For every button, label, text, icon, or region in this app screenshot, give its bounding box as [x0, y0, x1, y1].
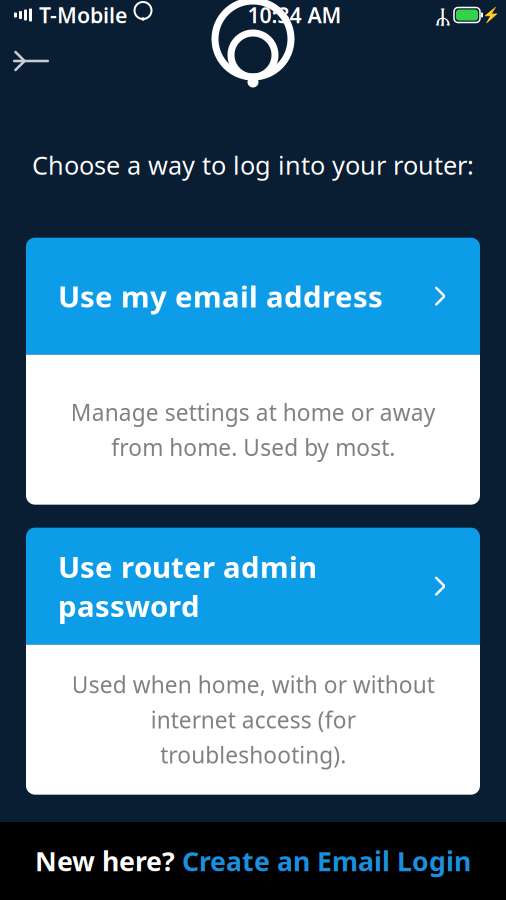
staticText: Choose a way to log into your router:	[32, 148, 474, 182]
button[interactable]: Use router admin password	[26, 528, 480, 795]
button[interactable]: Back	[0, 35, 62, 87]
staticText: Use router admin password	[58, 547, 317, 625]
staticText: New here?	[35, 843, 182, 879]
staticText: ᛦ	[435, 3, 449, 27]
staticText: Manage settings at home or away from hom…	[70, 397, 435, 462]
staticText: 10:34 AM	[247, 1, 341, 29]
staticText: Create an Email Login	[182, 843, 471, 879]
staticText: T-Mobile	[39, 1, 127, 29]
staticText: Use my email address	[58, 277, 383, 316]
staticText: ⚡	[482, 7, 500, 23]
button[interactable]: New here?	[0, 822, 506, 900]
staticText: Used when home, with or without internet…	[71, 669, 434, 770]
button[interactable]: Use my email address	[26, 238, 480, 505]
